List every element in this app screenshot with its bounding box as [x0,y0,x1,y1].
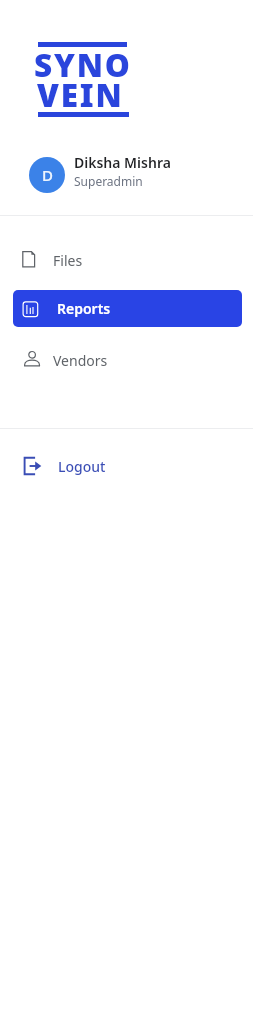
staticText: Diksha Mishra [74,153,171,172]
staticText: Vendors [53,351,108,370]
staticText: Files [53,251,83,270]
other: Logout [22,456,42,476]
staticText: D [42,165,53,185]
button[interactable]: Logout [13,449,241,485]
button[interactable]: Reports [13,290,242,327]
button[interactable]: D [0,147,253,203]
button[interactable]: Files [13,240,242,277]
button[interactable]: Vendors [13,340,242,377]
staticText: Logout [58,457,106,476]
staticText: SYNO [34,43,132,86]
staticText: VEIN [37,73,124,116]
staticText: Reports [57,299,111,318]
staticText: Superadmin [74,173,143,189]
